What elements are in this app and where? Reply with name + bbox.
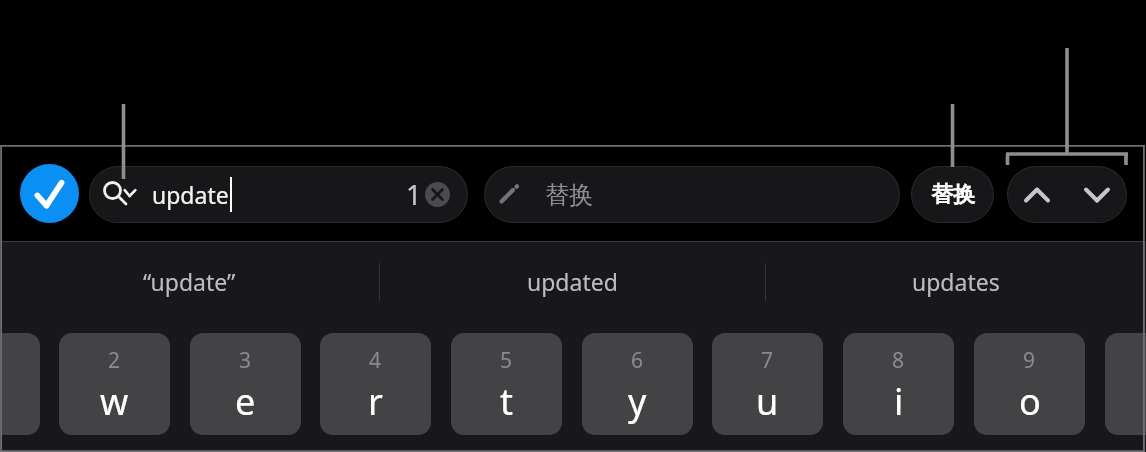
button[interactable]: updated <box>380 241 765 322</box>
staticText: 8 <box>892 346 905 375</box>
staticText: e <box>235 377 256 426</box>
button[interactable]: 4 <box>320 333 431 435</box>
button[interactable]: Clear search <box>425 182 450 207</box>
button[interactable]: 3 <box>190 333 301 435</box>
staticText: t <box>500 377 513 426</box>
staticText: y <box>628 377 647 426</box>
staticText: updated <box>527 266 618 297</box>
button[interactable]: 6 <box>582 333 693 435</box>
button[interactable]: updates <box>766 241 1146 322</box>
staticText: 2 <box>108 346 121 375</box>
staticText: 1 <box>406 176 422 213</box>
button[interactable]: 替换 <box>484 166 900 223</box>
button[interactable]: “update” <box>0 241 379 322</box>
button[interactable]: Next result <box>1067 166 1127 223</box>
button[interactable]: 5 <box>451 333 562 435</box>
button[interactable]: update <box>89 166 468 223</box>
staticText: update <box>152 179 229 210</box>
staticText: w <box>100 377 129 426</box>
staticText: r <box>368 377 383 426</box>
button[interactable]: 1 <box>0 333 40 435</box>
button[interactable]: Previous result <box>1007 166 1067 223</box>
staticText: updates <box>912 266 1000 297</box>
staticText: 3 <box>239 346 252 375</box>
staticText: u <box>756 377 779 426</box>
staticText: “update” <box>143 266 236 297</box>
button[interactable]: 8 <box>843 333 954 435</box>
button[interactable]: Done <box>20 164 79 223</box>
staticText: 替换 <box>931 181 975 209</box>
button[interactable]: 9 <box>974 333 1085 435</box>
staticText: 6 <box>631 346 644 375</box>
staticText: i <box>894 377 904 426</box>
button[interactable]: 7 <box>712 333 823 435</box>
staticText: 4 <box>369 346 382 375</box>
staticText: 9 <box>1023 346 1036 375</box>
button[interactable]: 0 <box>1105 333 1146 435</box>
staticText: 7 <box>761 346 774 375</box>
button[interactable]: 2 <box>59 333 170 435</box>
staticText: 5 <box>500 346 513 375</box>
button[interactable]: 替换 <box>911 166 994 223</box>
staticText: o <box>1019 377 1041 426</box>
staticText: 替换 <box>545 180 593 210</box>
